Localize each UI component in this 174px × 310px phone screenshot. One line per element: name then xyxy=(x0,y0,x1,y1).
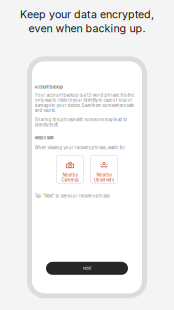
staticText: Your account backup is a 12 word phrase.… xyxy=(34,92,133,98)
staticText: and secret. xyxy=(34,108,55,113)
staticText: Nearby xyxy=(96,172,111,177)
button[interactable]: Nearby xyxy=(90,155,117,183)
staticText: identity theft. xyxy=(34,122,58,127)
staticText: Next xyxy=(83,266,91,271)
staticText: Observers xyxy=(94,177,114,183)
staticText: Sharing this phrase with someone may lea… xyxy=(34,117,127,122)
staticText: When viewing your recovery phrase, watch… xyxy=(34,145,125,150)
staticText: damage to your device. Save them somewhe… xyxy=(34,103,133,108)
staticText: Nearby xyxy=(62,172,77,177)
button[interactable]: Next xyxy=(46,262,128,275)
staticText: even when backing up. xyxy=(28,22,145,35)
staticText: Account Backup xyxy=(34,85,62,89)
staticText: Keep your data encrypted, xyxy=(20,8,154,21)
staticText: Keep it Safe xyxy=(34,135,53,140)
button[interactable]: Nearby xyxy=(56,155,83,183)
staticText: Tap "Next" to see your recovery phrase xyxy=(34,193,109,198)
staticText: only way to restore your identity in cas… xyxy=(34,98,132,103)
staticText: Cameras xyxy=(61,177,78,183)
